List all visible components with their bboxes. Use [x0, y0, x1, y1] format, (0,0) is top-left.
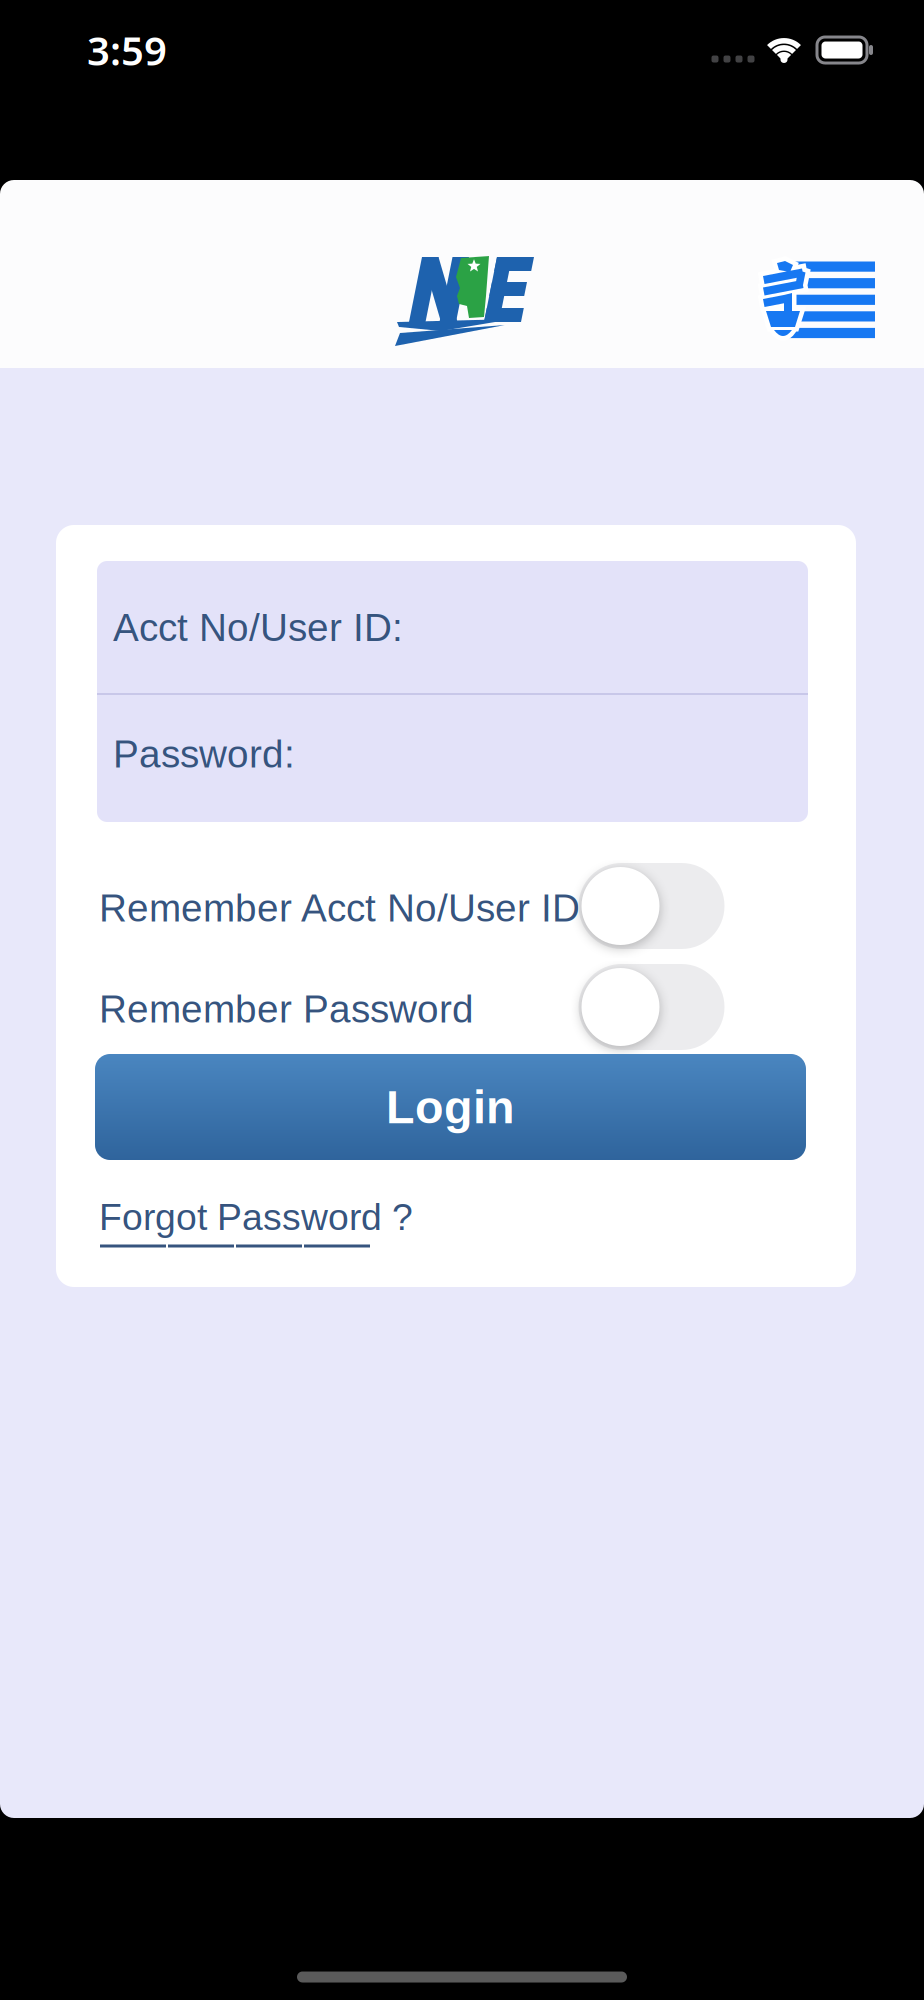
staticText: 3:59: [87, 23, 167, 76]
button[interactable]: Login: [95, 1054, 806, 1160]
staticText: Acct No/User ID:: [113, 606, 403, 649]
staticText: Forgot Password ?: [99, 1196, 413, 1238]
button[interactable]: Password:: [97, 689, 808, 819]
button[interactable]: Remember Password: [578, 964, 724, 1050]
staticText: Remember Password: [99, 987, 474, 1031]
staticText: Login: [386, 1081, 515, 1133]
staticText: Password:: [113, 732, 295, 776]
button[interactable]: Remember Acct No/User ID: [578, 863, 724, 949]
staticText: Remember Acct No/User ID: [99, 886, 580, 930]
button[interactable]: Forgot Password ?: [97, 1187, 808, 1247]
button[interactable]: Acct No/User ID:: [97, 562, 808, 692]
